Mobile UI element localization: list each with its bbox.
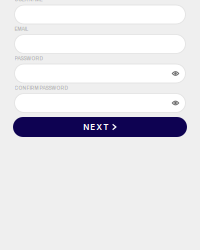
staticText: N E X T xyxy=(83,122,108,132)
staticText: CONFIRM PASSWORD xyxy=(14,83,68,91)
staticText: EMAIL xyxy=(14,24,28,32)
staticText: USERNAME xyxy=(14,0,42,3)
button[interactable]: N E X T xyxy=(14,117,185,137)
button[interactable]: Show confirm password xyxy=(171,98,185,107)
staticText: PASSWORD xyxy=(14,54,43,62)
button[interactable]: Show password xyxy=(171,69,185,78)
